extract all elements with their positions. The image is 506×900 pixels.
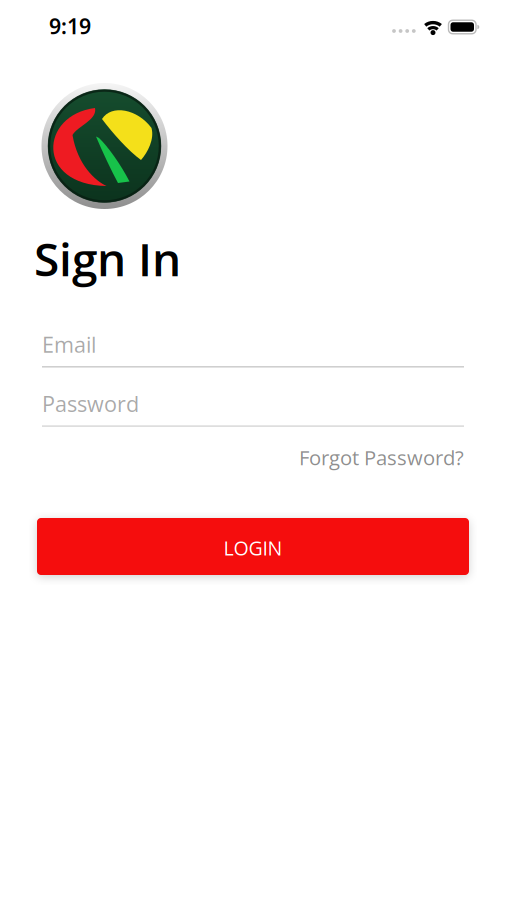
button[interactable]: Forgot Password? — [42, 444, 464, 471]
button[interactable]: Email — [42, 323, 464, 369]
staticText: Sign In — [34, 227, 181, 290]
staticText: Email — [42, 330, 96, 359]
button[interactable]: Password — [42, 383, 464, 429]
button[interactable]: LOGIN — [37, 518, 469, 575]
staticText: Forgot Password? — [299, 444, 464, 471]
staticText: LOGIN — [223, 535, 282, 561]
staticText: 9:19 — [49, 12, 91, 40]
staticText: Password — [42, 389, 139, 418]
